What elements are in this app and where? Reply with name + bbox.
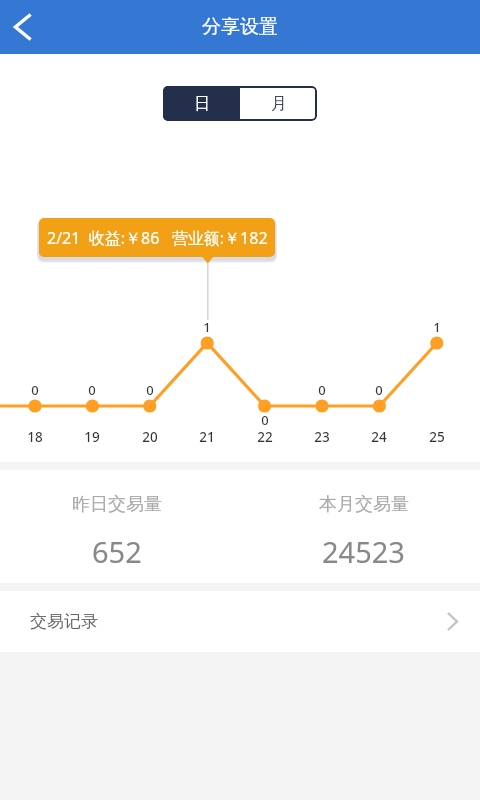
staticText: 23 [314,428,330,446]
staticText: 1 [433,318,441,336]
button[interactable]: Back [0,4,46,50]
staticText: 2/21 收益:￥86 营业额:￥182 [47,227,268,249]
staticText: 本月交易量 [319,493,409,516]
staticText: 月 [271,94,287,114]
button[interactable]: 日 [163,86,240,121]
button[interactable]: 昨日交易量 [0,470,233,583]
staticText: 20 [142,428,158,446]
staticText: 0 [318,381,326,399]
staticText: 昨日交易量 [72,493,162,516]
button[interactable]: 本月交易量 [247,470,480,583]
staticText: 25 [429,428,445,446]
staticText: 19 [84,428,100,446]
staticText: 22 [257,428,273,446]
staticText: 交易记录 [30,611,98,632]
staticText: 0 [261,411,269,429]
staticText: 0 [146,381,154,399]
staticText: 1 [203,318,211,336]
staticText: 652 [92,532,142,571]
staticText: 0 [375,381,383,399]
staticText: 0 [88,381,96,399]
staticText: 21 [199,428,215,446]
staticText: 分享设置 [202,15,278,39]
button[interactable]: 交易记录 [0,591,480,652]
staticText: 0 [31,381,39,399]
button[interactable]: 月 [240,86,317,121]
staticText: 18 [27,428,43,446]
staticText: 24523 [322,532,405,571]
staticText: 日 [194,94,210,114]
staticText: 24 [371,428,387,446]
